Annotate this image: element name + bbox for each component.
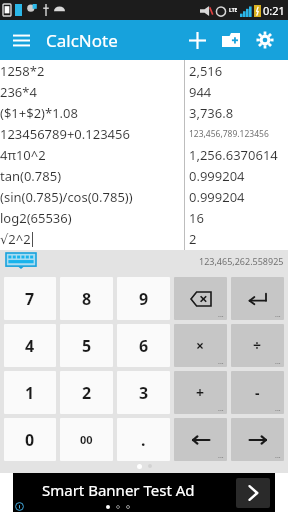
button[interactable]: 8 [60,277,113,320]
staticText: 7 [25,288,35,310]
staticText: - [255,383,260,402]
button[interactable]: 4 [4,324,56,367]
button[interactable]: log2(65536) [0,207,288,228]
staticText: . [141,429,146,451]
staticText: 5 [82,335,92,357]
staticText: 9 [139,288,149,310]
button[interactable]: 236*4 [0,81,288,102]
staticText: Smart Banner Test Ad [42,480,195,500]
staticText: 1258*2 [0,62,45,80]
staticText: 8 [82,288,92,310]
staticText: ... [275,357,281,367]
staticText: 00 [80,432,93,447]
staticText: ... [218,357,224,367]
button[interactable]: Show keyboard [6,253,36,269]
button[interactable]: MUL [174,324,227,367]
button[interactable]: ($1+$2)*1.08 [0,102,288,123]
staticText: ... [275,310,281,320]
staticText: √2^2 [0,230,31,248]
staticText: 16 [189,209,204,227]
button[interactable]: MINUS [231,371,284,414]
staticText: 1 [25,382,35,404]
button[interactable]: 0 [4,418,56,461]
button[interactable]: √2^2 [0,228,288,249]
button[interactable]: 7 [4,277,56,320]
staticText: ($1+$2)*1.08 [0,104,78,122]
button[interactable]: Smart Banner Test Ad [13,473,275,512]
button[interactable]: New folder [214,23,248,57]
staticText: ... [218,451,224,461]
button[interactable]: ENTER [231,277,284,320]
staticText: (sin(0.785)/cos(0.785)) [0,188,133,206]
staticText: log2(65536) [0,209,72,227]
staticText: 3,736.8 [189,104,234,122]
button[interactable]: RIGHT [231,418,284,461]
staticText: 4π10^2 [0,146,46,164]
staticText: 0.999204 [189,188,245,206]
staticText: ÷ [253,336,262,355]
button[interactable]: Settings [248,23,282,57]
button[interactable]: Menu [6,25,36,55]
staticText: CalcNote [46,29,118,52]
staticText: 0:21 [263,3,285,18]
staticText: 0 [25,429,35,451]
staticText: ... [218,310,224,320]
button[interactable]: BACKSPACE [174,277,227,320]
staticText: 2,516 [189,62,223,80]
staticText: 1,256.6370614 [189,146,278,164]
staticText: ... [218,404,224,414]
button[interactable]: tan(0.785) [0,165,288,186]
staticText: 3 [139,382,149,404]
button[interactable]: DIV [231,324,284,367]
staticText: 236*4 [0,83,37,101]
staticText: tan(0.785) [0,167,62,185]
button[interactable]: Add [180,23,214,57]
button[interactable]: 2 [60,371,113,414]
staticText: ... [275,451,281,461]
button[interactable]: 4π10^2 [0,144,288,165]
button[interactable]: 1258*2 [0,60,288,81]
button[interactable]: 6 [117,324,170,367]
button[interactable]: . [117,418,170,461]
staticText: 2 [189,230,197,248]
staticText: ... [275,404,281,414]
button[interactable]: 9 [117,277,170,320]
button[interactable]: 5 [60,324,113,367]
button[interactable]: PLUS [174,371,227,414]
staticText: + [196,383,205,402]
staticText: 123,465,262.558925 [199,255,284,267]
button[interactable]: Open ad [236,478,270,508]
staticText: 4 [25,335,35,357]
staticText: 123456789+0.123456 [0,125,130,143]
staticText: LTE [229,7,238,14]
staticText: 944 [189,83,212,101]
button[interactable]: 123456789+0.123456 [0,123,288,144]
button[interactable]: 3 [117,371,170,414]
staticText: 123,456,789.123456 [189,128,269,140]
staticText: 6 [139,335,149,357]
button[interactable]: LEFT [174,418,227,461]
staticText: × [196,336,205,355]
button[interactable]: 00 [60,418,113,461]
staticText: 2 [82,382,92,404]
staticText: 0.999204 [189,167,245,185]
button[interactable]: (sin(0.785)/cos(0.785)) [0,186,288,207]
button[interactable]: 1 [4,371,56,414]
